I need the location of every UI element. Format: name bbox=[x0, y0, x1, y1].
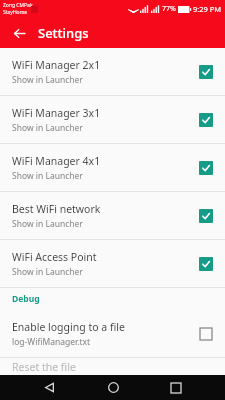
staticText: WiFi Access Point bbox=[12, 250, 97, 264]
staticText: Best WiFi network bbox=[12, 202, 101, 216]
button[interactable]: Reset the file bbox=[0, 358, 225, 375]
button[interactable]: Back bbox=[8, 22, 30, 44]
staticText: Debug bbox=[12, 293, 40, 305]
button[interactable]: Best WiFi network bbox=[0, 192, 225, 239]
staticText: WiFi Manager 4x1 bbox=[12, 154, 101, 168]
button[interactable]: Enable logging to a file bbox=[0, 310, 225, 357]
staticText: WiFi Manager 2x1 bbox=[12, 58, 101, 72]
button[interactable]: Checked bbox=[199, 209, 213, 223]
staticText: Show in Launcher bbox=[12, 266, 83, 278]
staticText: WiFi Manager 3x1 bbox=[12, 106, 101, 120]
staticText: 9:29 PM bbox=[193, 4, 222, 14]
button[interactable]: WiFi Manager 4x1 bbox=[0, 144, 225, 191]
button[interactable]: Checked bbox=[199, 161, 213, 175]
staticText: Zong CMPak bbox=[3, 2, 33, 9]
staticText: Enable logging to a file bbox=[12, 320, 125, 334]
staticText: Settings bbox=[38, 24, 89, 42]
button[interactable]: WiFi Access Point bbox=[0, 240, 225, 287]
staticText: log-WifiManager.txt bbox=[12, 336, 91, 348]
staticText: Show in Launcher bbox=[12, 122, 83, 134]
staticText: StayHome bbox=[3, 9, 28, 16]
button[interactable]: Home bbox=[98, 375, 128, 400]
button[interactable]: Checked bbox=[199, 113, 213, 127]
staticText: Show in Launcher bbox=[12, 170, 83, 182]
button[interactable]: Checked bbox=[199, 257, 213, 271]
button[interactable]: WiFi Manager 3x1 bbox=[0, 96, 225, 143]
button[interactable]: Unchecked bbox=[199, 327, 213, 341]
staticText: Reset the file bbox=[12, 360, 76, 374]
staticText: Show in Launcher bbox=[12, 74, 83, 86]
button[interactable]: Back bbox=[34, 375, 64, 400]
button[interactable]: Checked bbox=[199, 65, 213, 79]
staticText: 77% bbox=[162, 4, 176, 14]
button[interactable]: Recents bbox=[161, 375, 191, 400]
button[interactable]: WiFi Manager 2x1 bbox=[0, 48, 225, 95]
staticText: Show in Launcher bbox=[12, 218, 83, 230]
